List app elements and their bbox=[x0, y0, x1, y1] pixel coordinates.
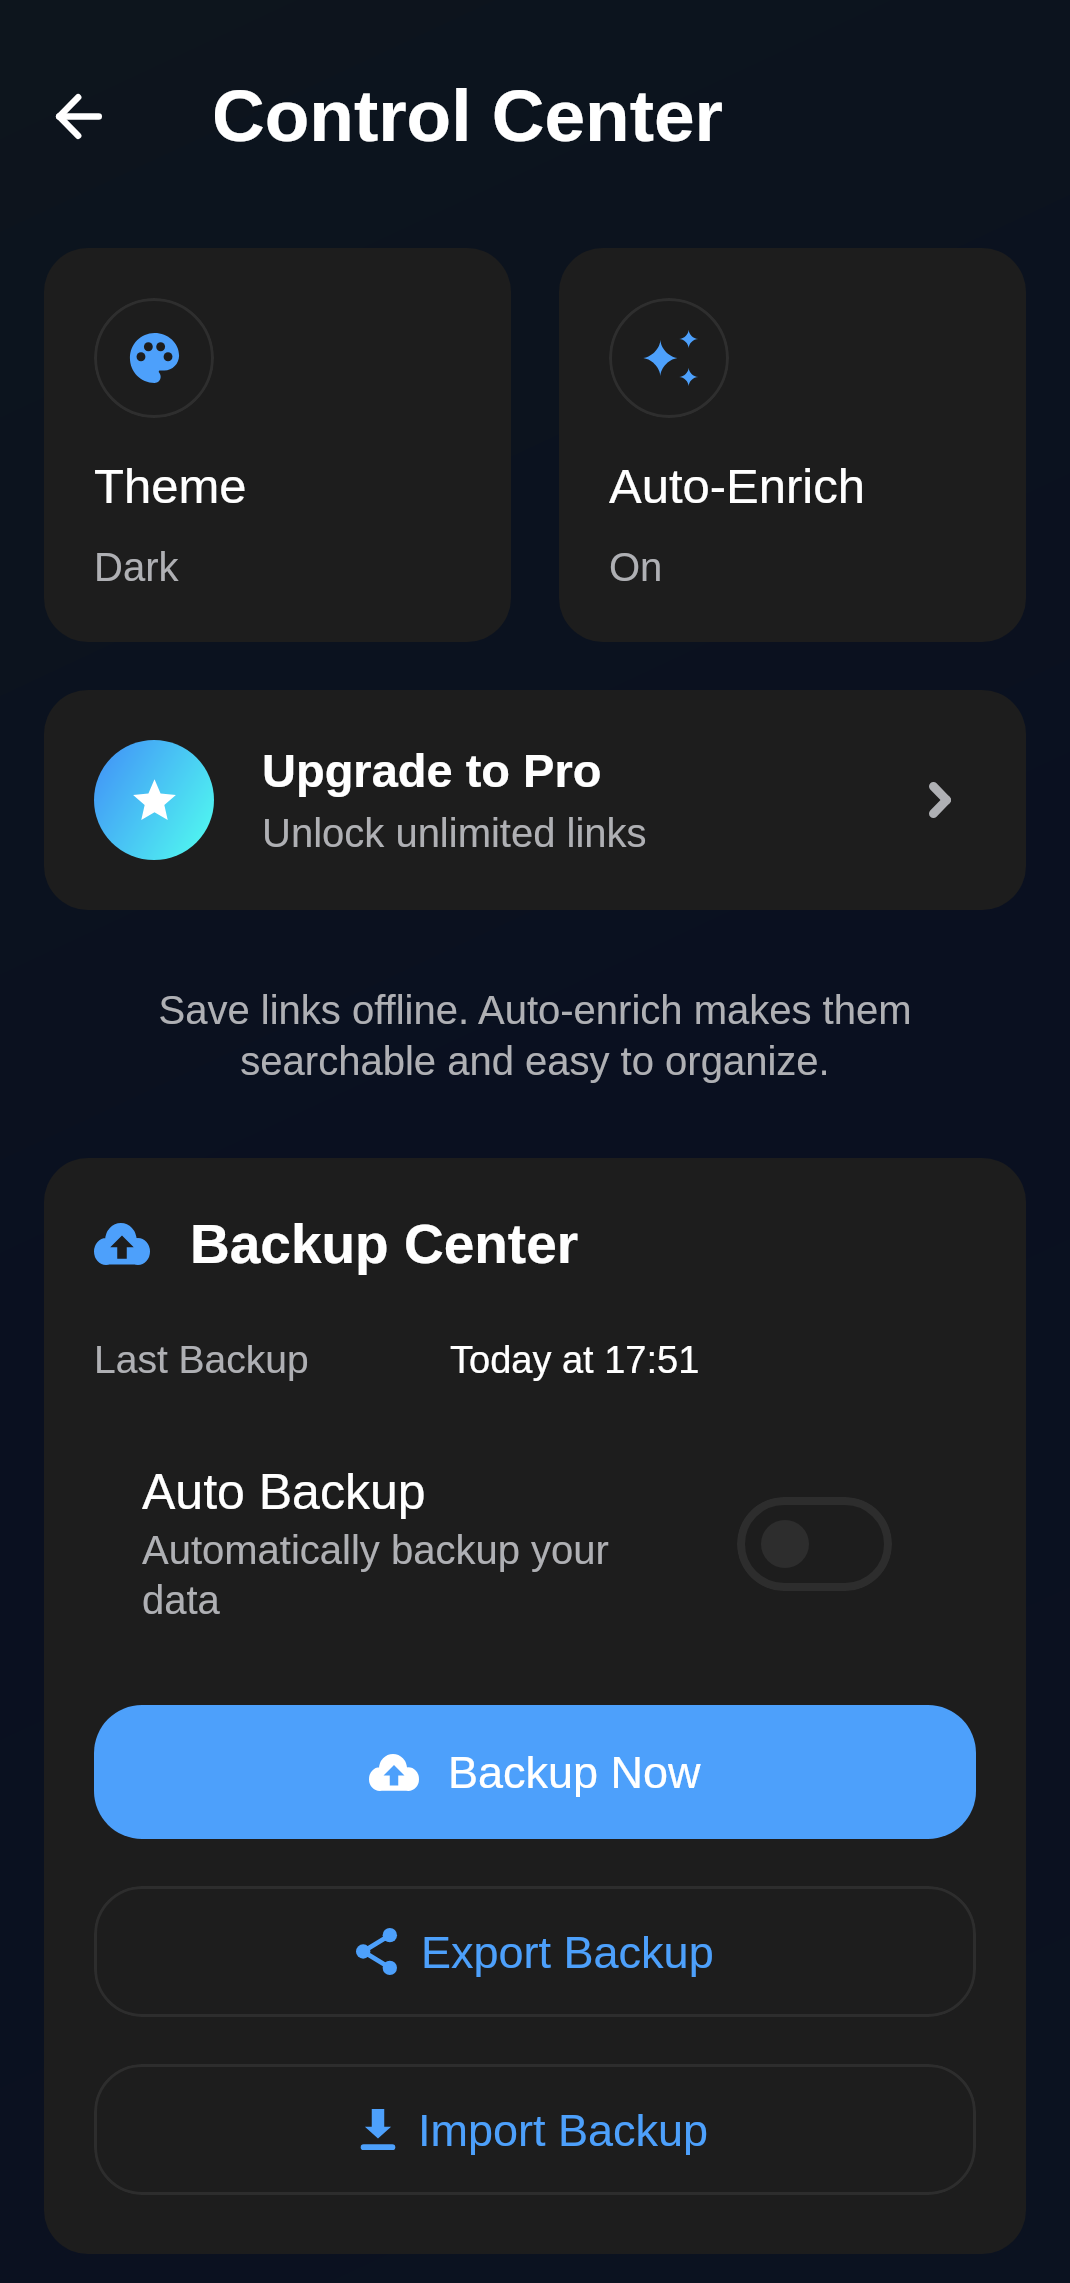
staticText: Unlock unlimited links bbox=[262, 811, 647, 856]
staticText: Backup Center bbox=[190, 1213, 579, 1274]
staticText: Dark bbox=[94, 545, 179, 590]
staticText: Auto-Enrich bbox=[609, 459, 866, 514]
staticText: Export Backup bbox=[421, 1927, 714, 1977]
staticText: Import Backup bbox=[418, 2105, 709, 2155]
button[interactable]: Upgrade to Pro bbox=[44, 690, 1026, 910]
staticText: Control Center bbox=[212, 75, 723, 157]
staticText: Automatically backup your data bbox=[142, 1528, 697, 1623]
button[interactable]: Theme bbox=[44, 248, 511, 642]
other: Share bbox=[356, 1928, 397, 1975]
button[interactable]: Share bbox=[94, 1886, 976, 2017]
staticText: Today at 17:51 bbox=[450, 1339, 700, 1381]
staticText: Auto Backup bbox=[142, 1464, 426, 1520]
other: Open bbox=[929, 782, 951, 818]
other: Download bbox=[362, 2109, 394, 2150]
staticText: Theme bbox=[94, 459, 247, 514]
staticText: Upgrade to Pro bbox=[262, 744, 602, 797]
button[interactable]: Back bbox=[45, 82, 113, 150]
staticText: Save links offline. Auto-enrich makes th… bbox=[70, 988, 1000, 1083]
staticText: Backup Now bbox=[448, 1747, 701, 1797]
button[interactable]: Auto-Enrich bbox=[559, 248, 1026, 642]
button[interactable]: Backup Now bbox=[94, 1705, 976, 1839]
staticText: Last Backup bbox=[94, 1338, 309, 1382]
button[interactable]: Download bbox=[94, 2064, 976, 2195]
staticText: On bbox=[609, 545, 663, 590]
button[interactable]: Auto Backup toggle bbox=[737, 1497, 892, 1591]
